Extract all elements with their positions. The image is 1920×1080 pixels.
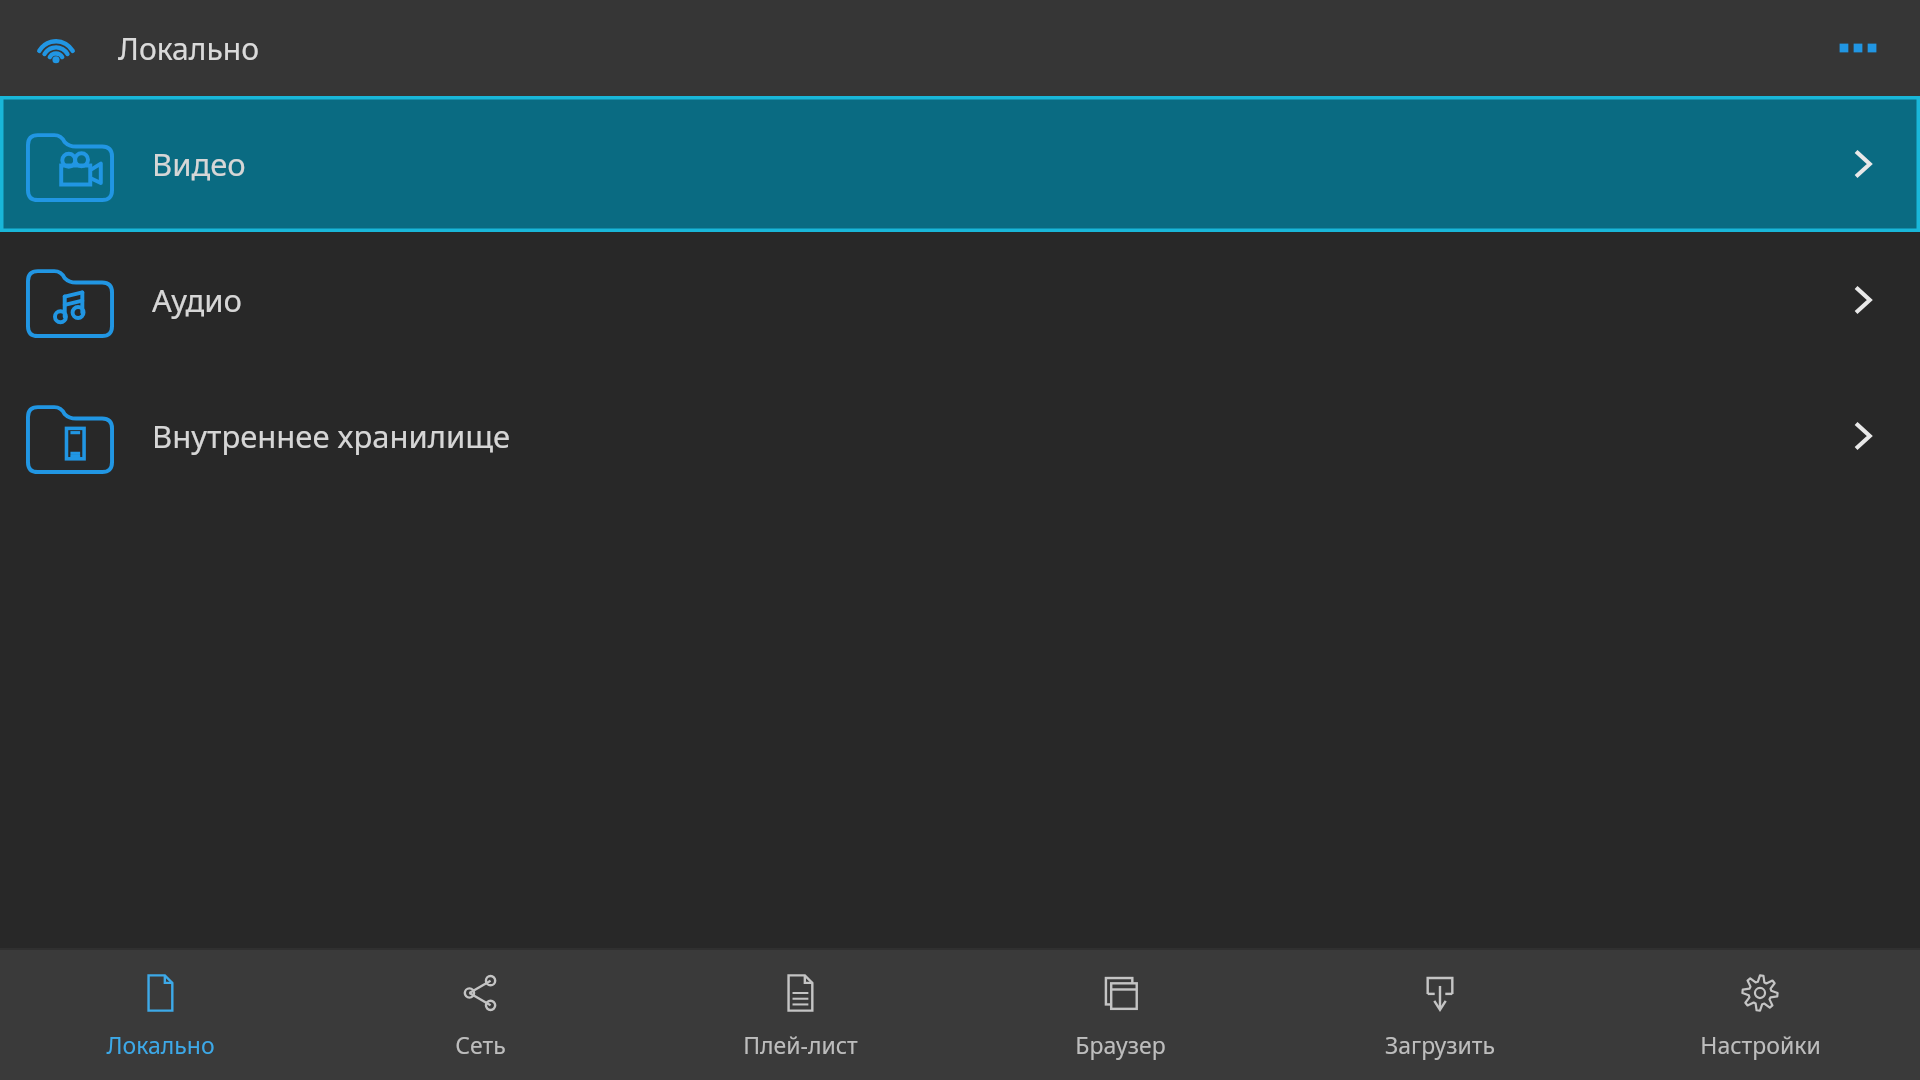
button[interactable]: Локально: [0, 950, 320, 1080]
button[interactable]: Плей-лист: [640, 950, 960, 1080]
staticText: Браузер: [1075, 1029, 1166, 1060]
button[interactable]: Загрузить: [1280, 950, 1600, 1080]
button[interactable]: More options: [1822, 12, 1894, 84]
staticText: Видео: [152, 143, 246, 185]
staticText: Локально: [106, 1029, 215, 1060]
staticText: Плей-лист: [743, 1029, 858, 1060]
button[interactable]: Сеть: [320, 950, 640, 1080]
staticText: Аудио: [152, 279, 242, 321]
button[interactable]: Аудио: [0, 232, 1920, 368]
staticText: Загрузить: [1385, 1029, 1495, 1060]
staticText: Сеть: [455, 1029, 506, 1060]
button[interactable]: Wi-Fi: [26, 18, 86, 78]
button[interactable]: Браузер: [960, 950, 1280, 1080]
button[interactable]: Видео: [0, 96, 1920, 232]
staticText: Локально: [118, 28, 259, 69]
button[interactable]: Внутреннее хранилище: [0, 368, 1920, 504]
button[interactable]: Настройки: [1600, 950, 1920, 1080]
staticText: Внутреннее хранилище: [152, 415, 511, 457]
staticText: Настройки: [1700, 1029, 1821, 1060]
